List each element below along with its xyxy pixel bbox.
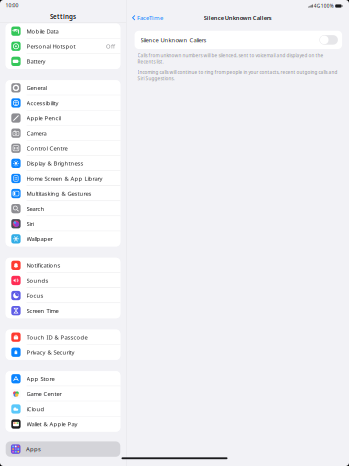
button[interactable]: Wallpaper — [6, 231, 120, 246]
staticText: Focus — [27, 292, 44, 299]
button[interactable]: Wallet & Apple Pay — [6, 416, 120, 432]
staticText: Personal Hotspot — [27, 42, 76, 50]
staticText: Privacy & Security — [27, 348, 75, 356]
button[interactable]: Notifications — [6, 258, 120, 273]
button[interactable]: App Store — [6, 371, 120, 386]
staticText: Incoming calls will continue to ring fro… — [138, 69, 338, 81]
button[interactable]: Control Centre — [6, 141, 120, 156]
staticText: Notifications — [27, 261, 61, 269]
staticText: Multitasking & Gestures — [27, 190, 92, 197]
staticText: Silence Unknown Callers — [141, 36, 207, 44]
staticText: Game Center — [27, 390, 62, 398]
button[interactable]: Accessibility — [6, 95, 120, 110]
button[interactable]: Apps — [6, 441, 120, 457]
staticText: Settings — [50, 12, 76, 21]
staticText: Apps — [26, 445, 41, 453]
staticText: iCloud — [27, 405, 45, 413]
button[interactable]: Personal Hotspot — [6, 39, 120, 54]
button[interactable]: Multitasking & Gestures — [6, 186, 120, 201]
button[interactable]: Display & Brightness — [6, 156, 120, 171]
staticText: Calls from unknown numbers will be silen… — [138, 52, 324, 65]
staticText: General — [27, 84, 47, 92]
button[interactable]: Privacy & Security — [6, 345, 120, 360]
button[interactable]: General — [6, 80, 120, 95]
staticText: Wallet & Apple Pay — [27, 420, 78, 428]
staticText: Off — [106, 42, 115, 50]
button[interactable]: Silence Unknown Callers toggle — [319, 35, 338, 45]
staticText: Search — [27, 205, 45, 213]
button[interactable]: Apple Pencil — [6, 110, 120, 126]
button[interactable]: iCloud — [6, 401, 120, 416]
button[interactable]: Screen Time — [6, 303, 120, 318]
staticText: Battery — [27, 57, 46, 65]
button[interactable]: Siri — [6, 216, 120, 231]
staticText: Control Centre — [27, 144, 68, 152]
staticText: FaceTime — [137, 14, 163, 22]
staticText: Silence Unknown Callers — [204, 14, 272, 22]
staticText: 10:00 — [6, 2, 19, 9]
staticText: Siri — [27, 220, 34, 228]
staticText: Screen Time — [27, 307, 59, 315]
button[interactable]: Search — [6, 201, 120, 216]
button[interactable]: Camera — [6, 126, 120, 141]
staticText: App Store — [27, 375, 55, 383]
staticText: Apple Pencil — [27, 114, 61, 122]
staticText: Sounds — [27, 276, 49, 284]
button[interactable]: Mobile Data — [6, 24, 120, 39]
staticText: Camera — [27, 129, 47, 137]
staticText: Touch ID & Passcode — [27, 333, 88, 341]
staticText: Wallpaper — [27, 235, 53, 243]
staticText: Home Screen & App Library — [27, 174, 103, 182]
button[interactable]: Home Screen & App Library — [6, 171, 120, 186]
button[interactable]: Battery — [6, 54, 120, 69]
staticText: Accessibility — [27, 99, 59, 107]
button[interactable]: Game Center — [6, 386, 120, 401]
staticText: Display & Brightness — [27, 159, 84, 167]
staticText: 4G 100% — [314, 3, 334, 9]
staticText: Mobile Data — [27, 27, 59, 35]
button[interactable]: Touch ID & Passcode — [6, 330, 120, 345]
button[interactable]: FaceTime — [132, 11, 166, 24]
button[interactable]: Focus — [6, 288, 120, 303]
button[interactable]: Sounds — [6, 273, 120, 288]
